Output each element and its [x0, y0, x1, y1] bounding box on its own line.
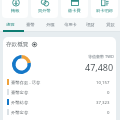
staticText: 信用卡	[64, 22, 77, 27]
staticText: 刷卡明細	[96, 8, 113, 13]
button[interactable]: 外匯	[40, 18, 60, 30]
button[interactable]: 臺幣	[20, 18, 40, 30]
button[interactable]: 刷卡明細	[91, 0, 118, 18]
staticText: 買外幣	[38, 8, 51, 13]
button[interactable]: 理財	[80, 18, 100, 30]
staticText: 外幣定存	[11, 110, 29, 115]
button[interactable]: 臺幣存款 - 活存	[3, 77, 116, 87]
staticText: 0	[107, 109, 110, 115]
staticText: 等值臺幣 TWD	[88, 54, 114, 59]
button[interactable]: 外幣定存	[3, 107, 116, 117]
other: Toggle balance visibility	[32, 42, 37, 47]
staticText: 外幣結存	[11, 100, 29, 105]
staticText: 臺幣存款 - 活存	[11, 79, 41, 85]
button[interactable]: 轉帳	[2, 0, 28, 18]
staticText: 外匯	[46, 22, 55, 27]
staticText: 臺幣定存	[11, 90, 29, 95]
staticText: 10,157	[96, 79, 110, 85]
staticText: 貸款	[106, 22, 115, 27]
staticText: 臺幣	[26, 22, 35, 27]
staticText: 47,480	[85, 61, 114, 73]
staticText: 轉帳	[11, 8, 20, 13]
staticText: 總覽	[6, 22, 15, 27]
staticText: 37,323	[96, 99, 110, 105]
button[interactable]: 信用卡	[60, 18, 80, 30]
button[interactable]: 臺幣定存	[3, 87, 116, 97]
staticText: 繳卡費	[68, 8, 81, 13]
staticText: 0	[107, 89, 110, 95]
button[interactable]: 外幣結存	[3, 97, 116, 107]
staticText: 理財	[86, 22, 95, 27]
button[interactable]: 存款概覽	[6, 41, 37, 48]
button[interactable]: 貸款	[100, 18, 120, 30]
staticText: 存款概覽	[6, 41, 29, 48]
button[interactable]: 總覽	[0, 18, 20, 30]
button[interactable]: 買外幣	[31, 0, 58, 18]
button[interactable]: 繳卡費	[61, 0, 88, 18]
